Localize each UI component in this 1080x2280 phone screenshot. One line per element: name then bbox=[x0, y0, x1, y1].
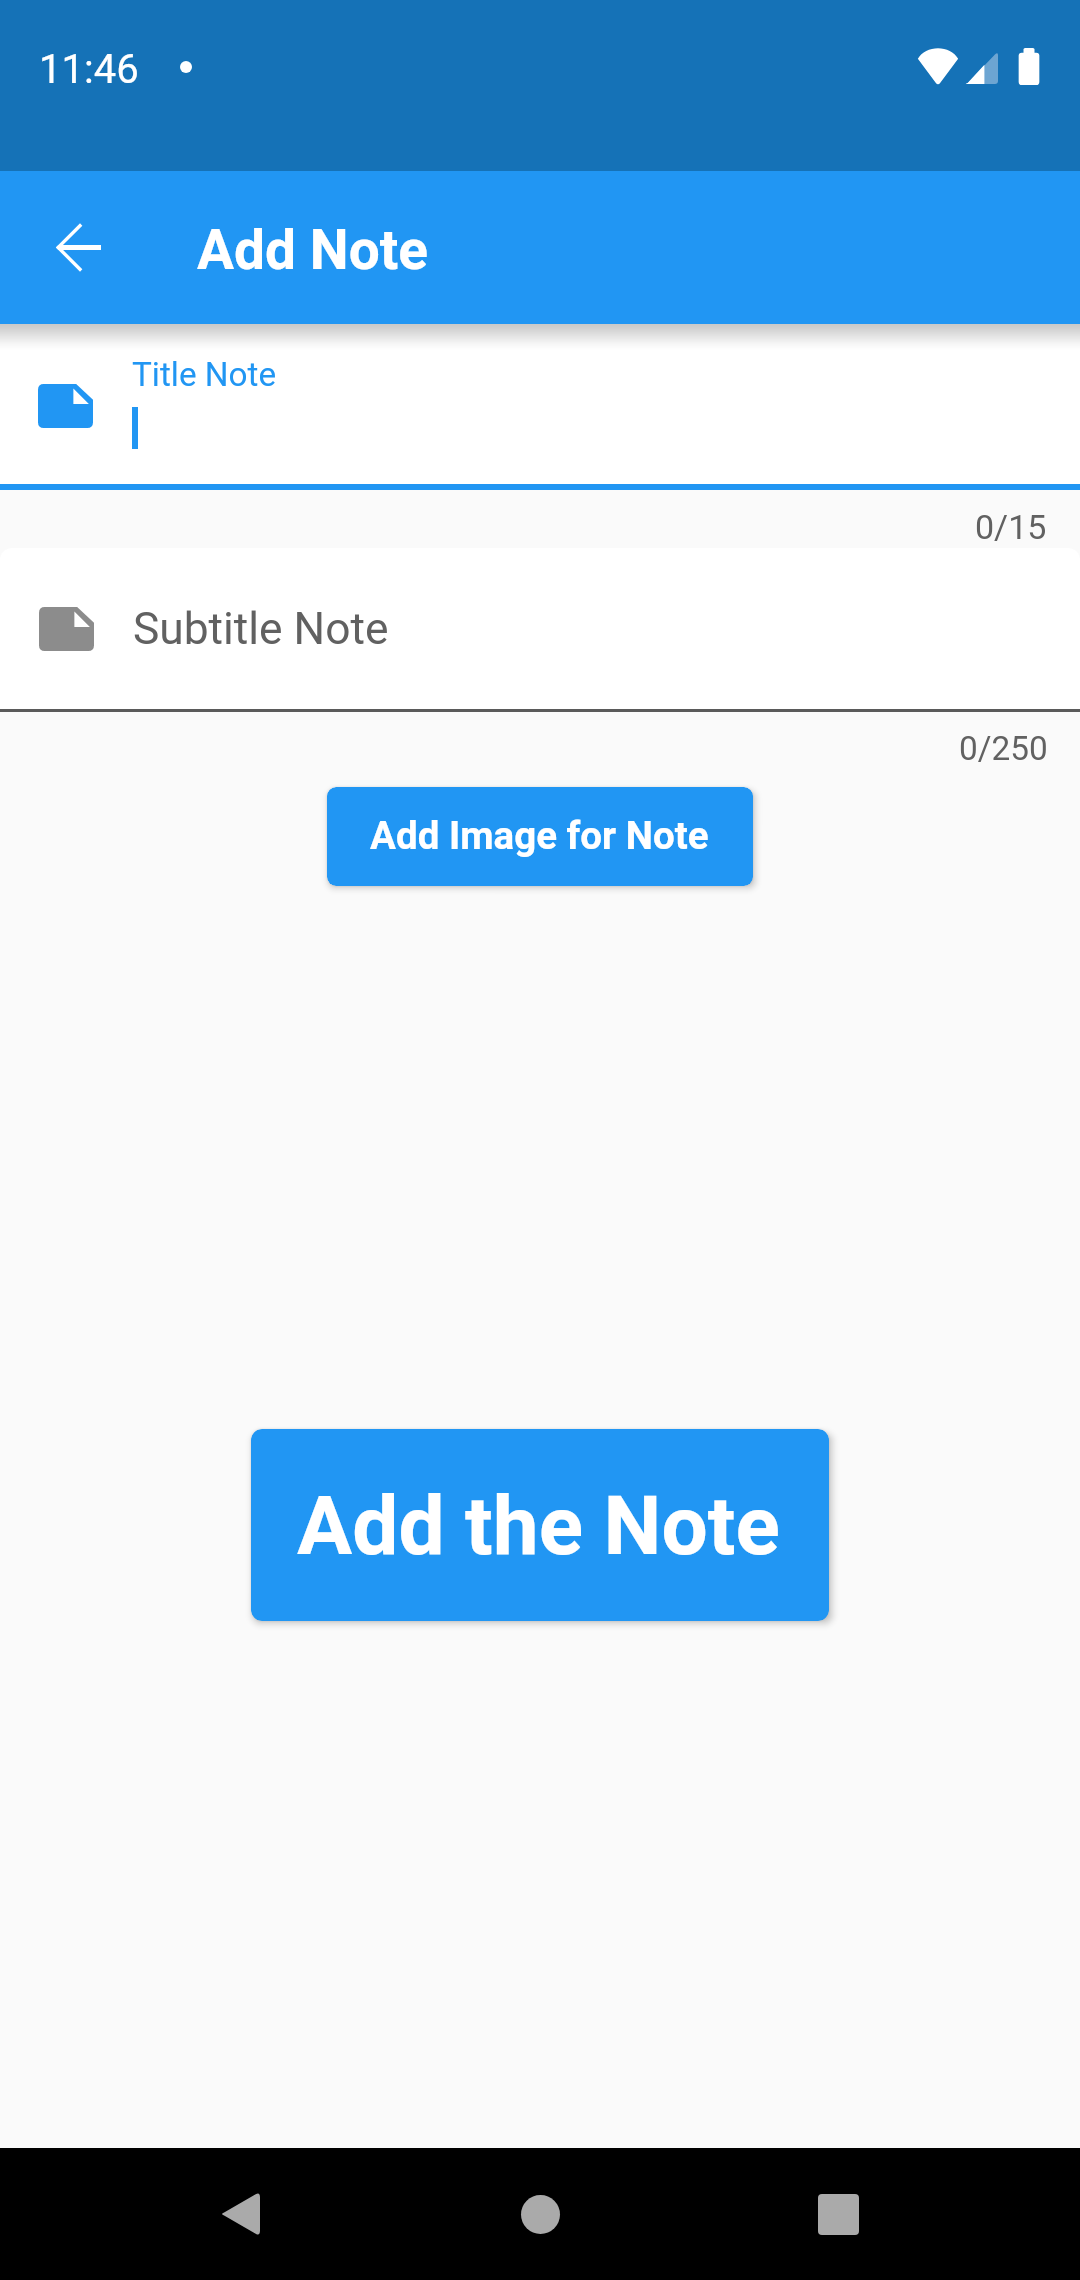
button[interactable]: Title Note bbox=[0, 324, 1080, 484]
staticText: Add Image for Note bbox=[370, 813, 709, 858]
button[interactable]: Recent apps bbox=[778, 2154, 898, 2274]
button[interactable]: Home bbox=[480, 2154, 600, 2274]
staticText: Add Note bbox=[197, 218, 429, 282]
staticText: Subtitle Note bbox=[133, 603, 389, 655]
button[interactable]: Add the Note bbox=[251, 1429, 829, 1621]
staticText: Title Note bbox=[132, 355, 277, 394]
staticText: Add the Note bbox=[297, 1478, 780, 1574]
button[interactable]: Back bbox=[180, 2154, 300, 2274]
staticText: 11:46 bbox=[39, 46, 139, 93]
staticText: 0/15 bbox=[975, 507, 1047, 547]
button[interactable]: Subtitle Note bbox=[0, 548, 1080, 709]
button[interactable]: Add Image for Note bbox=[327, 787, 753, 886]
staticText: 0/250 bbox=[959, 729, 1048, 768]
button[interactable]: Back bbox=[27, 195, 131, 299]
